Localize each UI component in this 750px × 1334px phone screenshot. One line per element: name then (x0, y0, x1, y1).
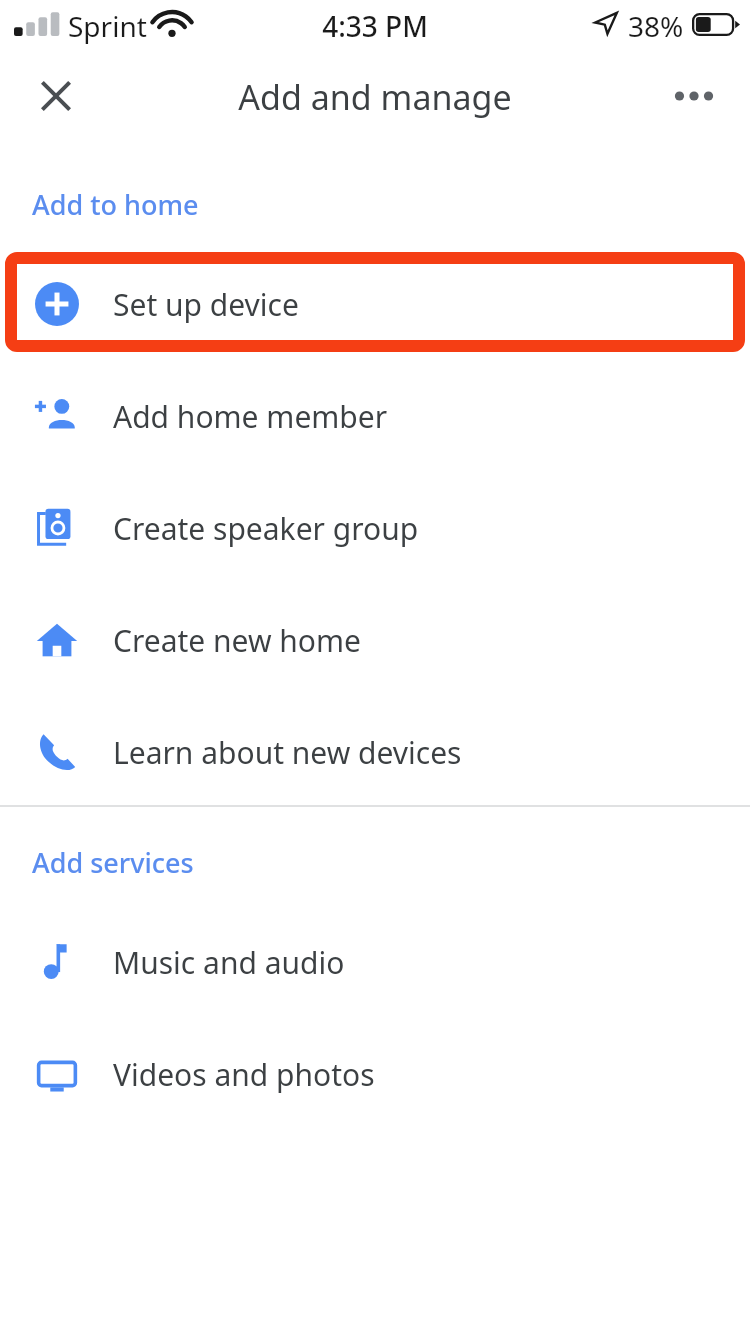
staticText: Add home member (113, 396, 388, 437)
button[interactable]: Add home member (0, 360, 750, 472)
button[interactable]: Set up device (0, 248, 750, 360)
staticText: Add services (32, 844, 194, 881)
staticText: Add and manage (238, 74, 512, 120)
button[interactable]: Learn about new devices (0, 696, 750, 808)
button[interactable]: Create new home (0, 584, 750, 696)
staticText: 4:33 PM (322, 7, 428, 45)
staticText: 38% (628, 7, 684, 45)
staticText: Set up device (113, 284, 299, 325)
staticText: Create speaker group (113, 508, 419, 549)
button[interactable]: Music and audio (0, 906, 750, 1018)
button[interactable]: Close (24, 64, 88, 128)
button[interactable]: More options (662, 64, 726, 128)
staticText: Music and audio (113, 942, 345, 983)
staticText: Create new home (113, 620, 361, 661)
staticText: Videos and photos (113, 1054, 375, 1095)
staticText: Sprint (68, 7, 147, 45)
button[interactable]: Create speaker group (0, 472, 750, 584)
staticText: Add to home (32, 186, 199, 223)
button[interactable]: Videos and photos (0, 1018, 750, 1130)
staticText: Learn about new devices (113, 732, 462, 773)
